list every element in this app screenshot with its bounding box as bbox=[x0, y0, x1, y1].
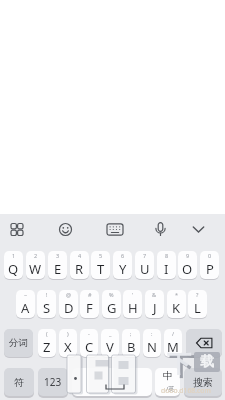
staticText: Q bbox=[8, 260, 19, 278]
staticText: C bbox=[85, 338, 94, 356]
staticText: ~ bbox=[24, 291, 28, 298]
button[interactable] bbox=[55, 218, 77, 241]
staticText: 1 bbox=[12, 252, 16, 259]
button[interactable]: 中 bbox=[155, 368, 180, 396]
staticText: 下 bbox=[167, 349, 191, 379]
staticText: & bbox=[152, 291, 157, 298]
button[interactable]: ~ bbox=[16, 290, 35, 318]
button[interactable]: 3 bbox=[48, 251, 67, 279]
staticText: ; bbox=[130, 330, 132, 337]
button[interactable]: % bbox=[102, 290, 121, 318]
staticText: @ bbox=[66, 291, 71, 298]
staticText: 载 bbox=[200, 353, 214, 371]
button[interactable]: * bbox=[167, 290, 186, 318]
staticText: : bbox=[151, 330, 153, 337]
button[interactable]: / bbox=[164, 329, 182, 357]
staticText: * bbox=[175, 291, 179, 298]
staticText: 6 bbox=[121, 252, 125, 259]
staticText: 5 bbox=[99, 252, 103, 259]
button[interactable] bbox=[72, 368, 152, 396]
button[interactable]: ( bbox=[38, 329, 56, 357]
button[interactable] bbox=[188, 218, 210, 241]
staticText: I bbox=[164, 260, 169, 278]
button[interactable]: ' bbox=[123, 290, 142, 318]
staticText: S bbox=[43, 299, 51, 317]
button[interactable]: @ bbox=[59, 290, 78, 318]
staticText: G bbox=[107, 299, 117, 317]
staticText: 7 bbox=[143, 252, 147, 259]
staticText: K bbox=[172, 299, 181, 317]
staticText: ? bbox=[196, 291, 199, 298]
staticText: E bbox=[54, 260, 62, 278]
staticText: _ bbox=[109, 330, 112, 337]
staticText: 下 bbox=[169, 351, 194, 382]
button[interactable]: _ bbox=[101, 329, 119, 357]
staticText: F bbox=[86, 299, 93, 317]
button[interactable]: # bbox=[80, 290, 99, 318]
button[interactable]: 2 bbox=[26, 251, 45, 279]
staticText: B bbox=[127, 338, 136, 356]
staticText: / bbox=[172, 330, 175, 337]
staticText: 8 bbox=[165, 252, 169, 259]
staticText: T bbox=[97, 260, 105, 278]
staticText: D bbox=[64, 299, 74, 317]
button[interactable] bbox=[150, 218, 172, 241]
staticText: ( bbox=[46, 330, 48, 337]
button[interactable]: 8 bbox=[157, 251, 176, 279]
staticText: 3 bbox=[56, 252, 60, 259]
staticText: ! bbox=[46, 291, 48, 298]
staticText: 符 bbox=[14, 376, 24, 389]
staticText: R bbox=[75, 260, 84, 278]
staticText: A bbox=[21, 299, 30, 317]
button[interactable]: 搜索 bbox=[184, 368, 222, 396]
button[interactable]: ) bbox=[59, 329, 77, 357]
button[interactable]: ; bbox=[122, 329, 140, 357]
staticText: H bbox=[128, 299, 138, 317]
button[interactable] bbox=[6, 218, 28, 241]
staticText: L bbox=[194, 299, 201, 317]
staticText: 分词 bbox=[9, 337, 28, 349]
button[interactable]: ? bbox=[188, 290, 207, 318]
staticText: # bbox=[88, 291, 92, 298]
staticText: W bbox=[29, 260, 42, 278]
staticText: 123 bbox=[44, 375, 62, 389]
button[interactable]: ! bbox=[37, 290, 56, 318]
button[interactable]: 分词 bbox=[4, 329, 33, 357]
staticText: J bbox=[153, 299, 157, 317]
staticText: 2 bbox=[34, 252, 38, 259]
staticText: O bbox=[182, 260, 193, 278]
staticText: V bbox=[106, 338, 114, 356]
button[interactable]: 123 bbox=[38, 368, 68, 396]
staticText: /英 bbox=[166, 385, 175, 393]
staticText: Z bbox=[43, 338, 51, 356]
staticText: X bbox=[64, 338, 72, 356]
staticText: U bbox=[140, 260, 150, 278]
button[interactable]: 9 bbox=[178, 251, 197, 279]
staticText: P bbox=[206, 260, 214, 278]
button[interactable]: 6 bbox=[113, 251, 132, 279]
staticText: ' bbox=[132, 291, 134, 298]
staticText: dooo.d168.com bbox=[161, 386, 211, 395]
button[interactable]: 5 bbox=[91, 251, 110, 279]
button[interactable]: 7 bbox=[135, 251, 154, 279]
staticText: ) bbox=[67, 330, 69, 337]
staticText: 4 bbox=[78, 252, 82, 259]
staticText: M bbox=[167, 338, 179, 356]
staticText: 9 bbox=[186, 252, 190, 259]
button[interactable] bbox=[104, 218, 126, 241]
button[interactable]: 4 bbox=[70, 251, 89, 279]
staticText: Y bbox=[119, 260, 127, 278]
staticText: 搜索 bbox=[193, 376, 213, 389]
button[interactable]: 符 bbox=[4, 368, 34, 396]
staticText: 0 bbox=[208, 252, 212, 259]
staticText: 中 bbox=[163, 369, 173, 382]
button[interactable]: : bbox=[143, 329, 161, 357]
button[interactable]: 0 bbox=[200, 251, 219, 279]
staticText: N bbox=[147, 338, 157, 356]
staticText: - bbox=[88, 330, 90, 337]
staticText: % bbox=[109, 291, 114, 298]
button[interactable]: & bbox=[145, 290, 164, 318]
button[interactable] bbox=[186, 329, 222, 357]
button[interactable]: - bbox=[80, 329, 98, 357]
button[interactable]: 1 bbox=[4, 251, 23, 279]
